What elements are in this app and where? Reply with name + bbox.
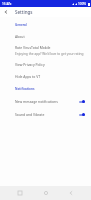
button[interactable]: Back xyxy=(0,7,11,17)
staticText: Sound and Vibrate xyxy=(15,112,45,117)
button[interactable]: Notifications xyxy=(0,85,91,93)
staticText: Enjoying the app? We'd love to get your … xyxy=(15,52,84,56)
button[interactable]: Sound and Vibrate xyxy=(0,110,91,119)
button[interactable]: View Privacy Policy xyxy=(0,60,91,69)
staticText: 16:27 xyxy=(2,2,11,6)
button[interactable]: Hide Apps to VT xyxy=(0,72,91,81)
button[interactable]: Recents xyxy=(14,187,26,199)
button[interactable]: Back xyxy=(65,187,77,199)
button[interactable]: New message notifications xyxy=(0,97,91,106)
staticText: New message notifications xyxy=(15,99,58,104)
staticText: Notifications xyxy=(15,87,35,91)
button[interactable]: About xyxy=(0,32,91,41)
button[interactable]: Rate VirusTotal Mobile xyxy=(0,43,91,52)
button[interactable]: Toggle xyxy=(79,113,85,116)
staticText: About xyxy=(15,34,25,39)
staticText: Hide Apps to VT xyxy=(15,74,41,79)
button[interactable]: General xyxy=(0,21,91,29)
staticText: Rate VirusTotal Mobile xyxy=(15,45,51,50)
staticText: General xyxy=(15,23,27,27)
staticText: View Privacy Policy xyxy=(15,62,45,67)
staticText: Settings xyxy=(15,9,33,15)
button[interactable]: Toggle xyxy=(79,100,85,103)
button[interactable]: Home xyxy=(40,187,52,199)
staticText: 100% xyxy=(78,2,87,6)
